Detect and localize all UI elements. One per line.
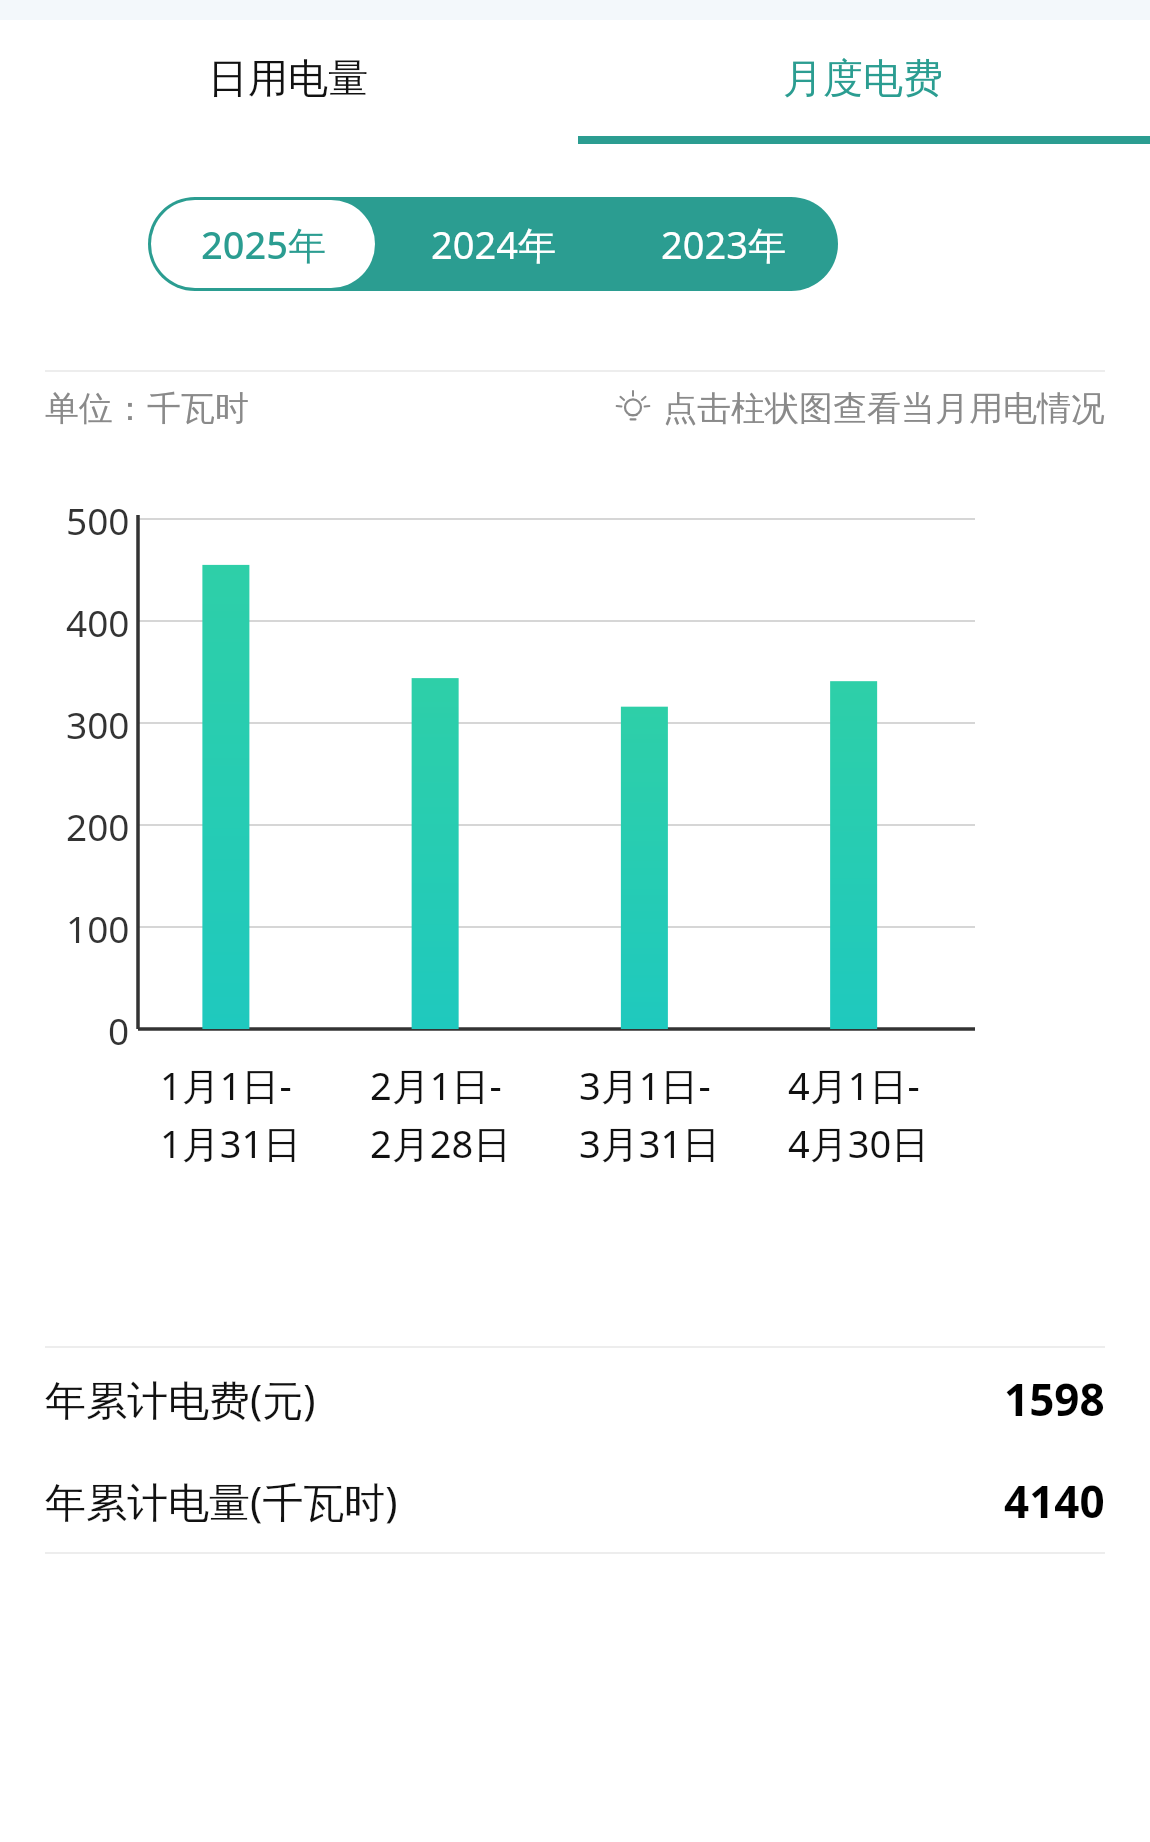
button[interactable]: 提示 <box>613 387 1105 430</box>
staticText: 单位：千瓦时 <box>45 387 249 430</box>
staticText: 日用电量 <box>208 53 368 103</box>
staticText: 500 <box>66 495 130 545</box>
staticText: 0 <box>108 1005 130 1055</box>
staticText: 1598 <box>1004 1369 1105 1429</box>
staticText: 点击柱状图查看当月用电情况 <box>663 387 1105 430</box>
staticText: 400 <box>66 597 130 647</box>
button[interactable]: 3月1日- <box>557 1059 766 1169</box>
button[interactable]: 2025年 <box>151 200 375 288</box>
staticText: 2月1日- <box>370 1059 502 1111</box>
staticText: 2023年 <box>661 218 786 270</box>
other: 提示 <box>613 389 653 429</box>
staticText: 300 <box>66 699 130 749</box>
staticText: 200 <box>66 801 130 851</box>
staticText: 4140 <box>1004 1471 1105 1531</box>
button[interactable]: 年累计电量(千瓦时) <box>0 1450 1150 1552</box>
staticText: 月度电费 <box>783 53 943 103</box>
button[interactable]: 2024年 <box>378 197 608 291</box>
staticText: 2月28日 <box>370 1117 512 1169</box>
staticText: 年累计电费(元) <box>45 1371 316 1427</box>
staticText: 4月1日- <box>788 1059 920 1111</box>
staticText: 100 <box>66 903 130 953</box>
button[interactable]: 4月1日- <box>766 1059 975 1169</box>
button[interactable]: 2023年 <box>608 197 838 291</box>
staticText: 2024年 <box>431 218 556 270</box>
staticText: 2025年 <box>201 218 326 270</box>
staticText: 3月1日- <box>579 1059 711 1111</box>
staticText: 1月1日- <box>160 1059 292 1111</box>
button[interactable]: 月度电费 <box>575 20 1150 136</box>
staticText: 1月31日 <box>160 1117 302 1169</box>
button[interactable]: 年累计电费(元) <box>0 1348 1150 1450</box>
button[interactable]: 日用电量 <box>0 20 575 136</box>
staticText: 3月31日 <box>579 1117 721 1169</box>
staticText: 年累计电量(千瓦时) <box>45 1473 398 1529</box>
staticText: 4月30日 <box>788 1117 930 1169</box>
button[interactable]: 1月1日- <box>138 1059 348 1169</box>
button[interactable]: 2月1日- <box>348 1059 557 1169</box>
